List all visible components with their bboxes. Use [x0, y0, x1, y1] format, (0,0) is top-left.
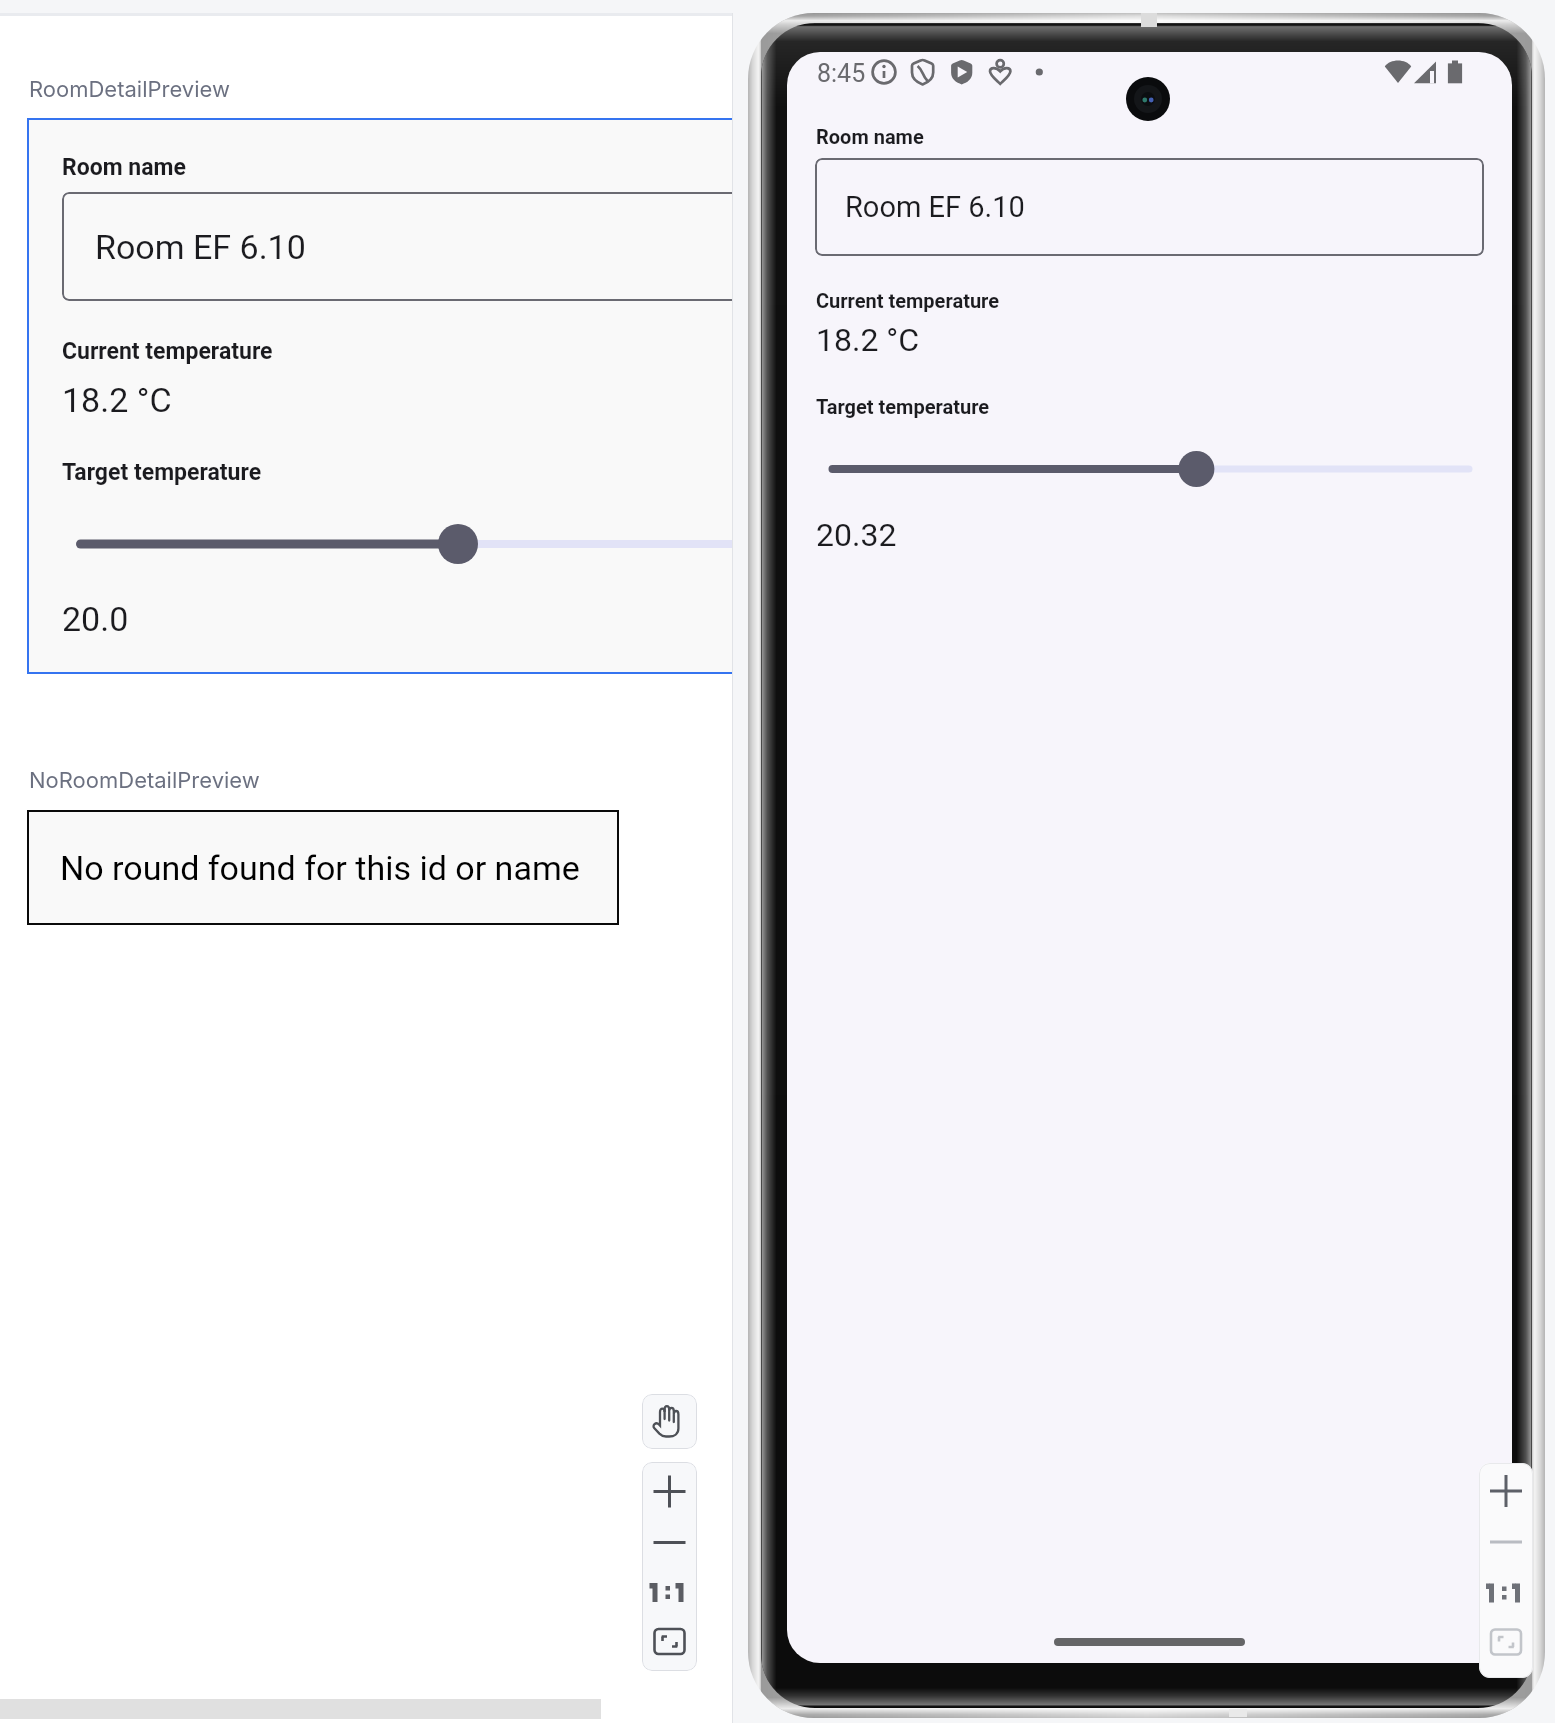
button[interactable]: Room EF 6.10 [815, 158, 1484, 256]
button[interactable]: Pan tool [642, 1394, 697, 1449]
button[interactable]: Room EF 6.10 [62, 192, 794, 301]
button[interactable]: Zoom in [642, 1464, 697, 1519]
staticText: Room name [816, 125, 924, 148]
staticText: Room name [62, 154, 186, 181]
staticText: Target temperature [62, 459, 262, 486]
button[interactable]: Zoom out [1479, 1515, 1533, 1569]
staticText: Target temperature [816, 395, 990, 418]
button[interactable]: No round found for this id or name [27, 810, 619, 925]
button[interactable]: Target temperature slider [27, 514, 759, 574]
button[interactable]: Fit to screen [1479, 1615, 1533, 1669]
staticText: 20.32 [816, 516, 897, 554]
button[interactable]: Zoom out [642, 1515, 697, 1570]
staticText: No round found for this id or name [60, 848, 580, 888]
staticText: Room EF 6.10 [95, 227, 306, 267]
staticText: Current temperature [816, 289, 1000, 312]
button[interactable]: Actual size (1:1) [642, 1565, 697, 1620]
staticText: 18.2 °C [816, 321, 920, 359]
staticText: Room EF 6.10 [845, 190, 1025, 224]
staticText: 8:45 [817, 59, 866, 88]
staticText: 18.2 °C [62, 380, 172, 420]
button[interactable]: Room name [27, 118, 759, 674]
button[interactable]: Fit to screen [642, 1614, 697, 1669]
button[interactable]: Actual size (1:1) [1479, 1566, 1533, 1620]
staticText: 20.0 [62, 599, 129, 639]
button[interactable]: Target temperature slider [787, 439, 1512, 499]
staticText: RoomDetailPreview [29, 76, 230, 103]
staticText: NoRoomDetailPreview [29, 767, 260, 794]
staticText: Current temperature [62, 338, 273, 365]
button[interactable]: Zoom in [1479, 1464, 1533, 1518]
